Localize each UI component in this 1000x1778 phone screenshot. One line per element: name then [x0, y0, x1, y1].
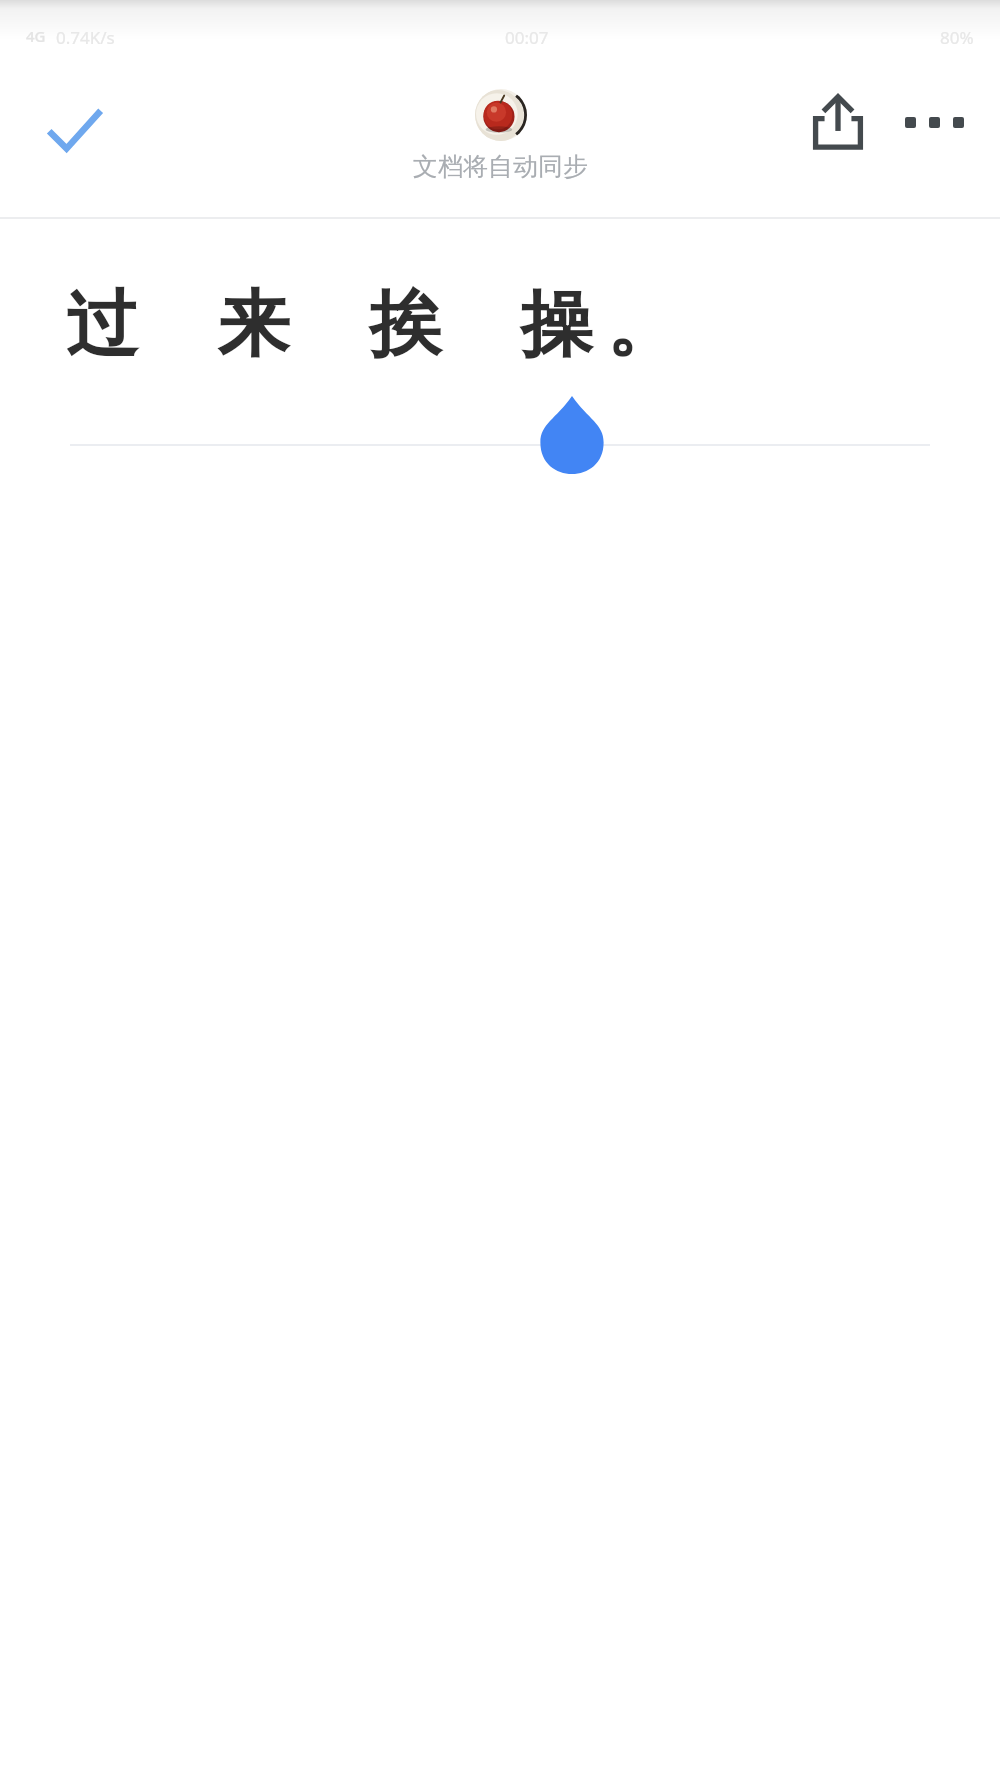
staticText: 文档将自动同步: [413, 151, 588, 182]
staticText: 80%: [940, 26, 974, 49]
staticText: 00:07: [505, 26, 549, 49]
button[interactable]: Share: [790, 74, 886, 170]
button[interactable]: 过 来 挨 操。: [66, 272, 693, 370]
button[interactable]: More options: [886, 74, 982, 170]
button[interactable]: 文档将自动同步: [413, 89, 588, 182]
staticText: 0.74K/s: [56, 26, 115, 49]
staticText: 4G: [26, 26, 46, 46]
button[interactable]: Done: [26, 82, 122, 178]
